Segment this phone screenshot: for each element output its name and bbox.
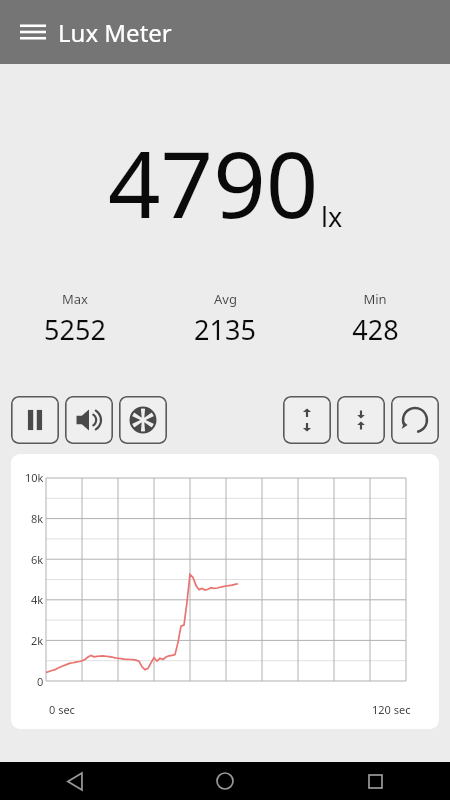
button[interactable]: 10k xyxy=(11,454,439,729)
staticText: 8k xyxy=(31,511,44,526)
button[interactable]: Home xyxy=(208,764,242,798)
staticText: 2k xyxy=(31,633,44,648)
staticText: Min xyxy=(363,290,387,308)
staticText: 0 sec xyxy=(49,702,75,717)
staticText: 10k xyxy=(25,470,44,485)
staticText: lx xyxy=(321,198,343,235)
button[interactable]: Reset measurement xyxy=(391,396,439,444)
staticText: 4790 xyxy=(108,120,319,245)
button[interactable]: Recent apps xyxy=(358,764,392,798)
staticText: 2135 xyxy=(194,311,256,348)
staticText: 5252 xyxy=(44,311,106,348)
button[interactable]: Back xyxy=(58,764,92,798)
button[interactable]: Shrink chart scale xyxy=(337,396,385,444)
button[interactable]: Open navigation menu xyxy=(14,13,52,51)
button[interactable]: Camera light sensor xyxy=(119,396,167,444)
staticText: 6k xyxy=(31,552,44,567)
button[interactable]: Expand chart scale xyxy=(283,396,331,444)
staticText: Avg xyxy=(214,290,237,308)
staticText: Max xyxy=(62,290,88,308)
staticText: 4k xyxy=(31,592,44,607)
staticText: 120 sec xyxy=(372,702,411,717)
staticText: 428 xyxy=(352,311,399,348)
staticText: Lux Meter xyxy=(58,16,172,49)
button[interactable]: Toggle sound xyxy=(65,396,113,444)
staticText: 0 xyxy=(37,674,44,689)
button[interactable]: Pause measurement xyxy=(11,396,59,444)
